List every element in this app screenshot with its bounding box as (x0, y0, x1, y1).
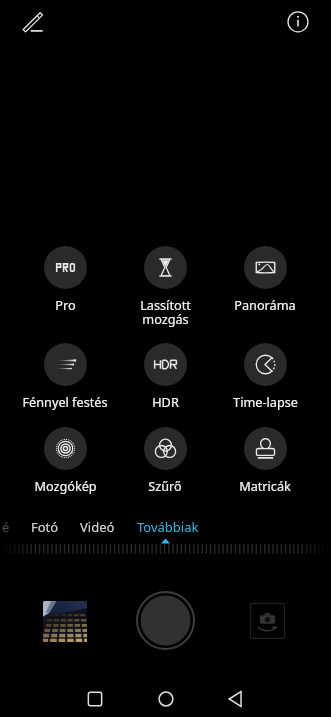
staticText: Time-lapse (233, 393, 298, 410)
staticText: é (2, 518, 10, 536)
button[interactable]: Videó (52, 516, 142, 538)
button[interactable]: Továbbiak (123, 516, 213, 538)
button[interactable]: Switch camera (250, 603, 285, 639)
button[interactable]: Lassított mozgás (115, 246, 215, 328)
staticText: Szűrő (148, 477, 182, 494)
staticText: HDR (152, 393, 179, 410)
button[interactable]: Fénnyel festés (15, 343, 115, 410)
button[interactable]: Shutter (136, 591, 195, 650)
staticText: Mozgókép (34, 477, 97, 494)
staticText: Videó (80, 518, 115, 536)
button[interactable]: Info (282, 6, 314, 38)
staticText: Pro (55, 296, 76, 313)
staticText: Lassított mozgás (140, 296, 191, 328)
button[interactable]: HDR (115, 343, 215, 410)
staticText: Fotó (31, 518, 59, 536)
button[interactable]: Gallery (43, 601, 87, 642)
button[interactable]: Pro (15, 246, 115, 313)
button[interactable]: Matricák (215, 427, 315, 494)
button[interactable]: Fotó (0, 516, 90, 538)
staticText: Matricák (239, 477, 291, 494)
staticText: Fénnyel festés (22, 393, 108, 410)
button[interactable]: Edit (12, 6, 44, 38)
button[interactable]: Recents (83, 687, 107, 711)
button[interactable]: Szűrő (115, 427, 215, 494)
button[interactable]: Mozgókép (15, 427, 115, 494)
button[interactable]: Panoráma (215, 246, 315, 313)
button[interactable]: Home (154, 687, 178, 711)
button[interactable]: Time-lapse (215, 343, 315, 410)
button[interactable]: Back (224, 687, 248, 711)
staticText: Továbbiak (137, 518, 199, 536)
staticText: Panoráma (234, 296, 296, 313)
button[interactable]: é (1, 516, 11, 538)
